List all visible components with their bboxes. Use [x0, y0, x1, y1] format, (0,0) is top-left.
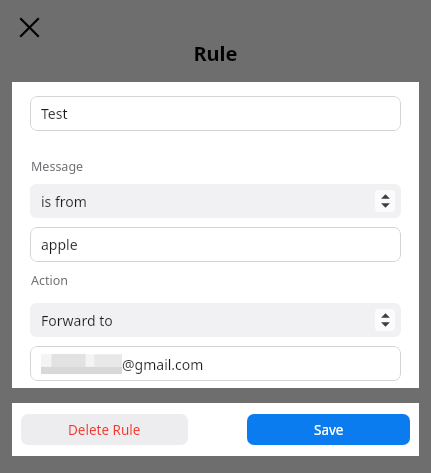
staticText: Rule	[0, 40, 431, 67]
button[interactable]: Save	[247, 414, 410, 445]
button[interactable]: apple	[30, 227, 401, 262]
button[interactable]: Close	[13, 11, 45, 43]
button[interactable]: Delete Rule	[21, 414, 188, 445]
staticText: Save	[314, 421, 344, 439]
staticText: is from	[41, 192, 87, 211]
staticText: Delete Rule	[68, 421, 141, 439]
button[interactable]: is from	[30, 184, 401, 218]
staticText: @gmail.com	[122, 355, 204, 374]
staticText: Message	[31, 158, 84, 175]
button[interactable]: Test	[30, 96, 401, 131]
staticText: Test	[41, 104, 68, 123]
button[interactable]: Forward to	[30, 303, 401, 337]
staticText: apple	[41, 235, 78, 254]
staticText: Forward to	[41, 311, 113, 330]
button[interactable]: @gmail.com	[30, 346, 401, 381]
staticText: Action	[31, 272, 69, 289]
